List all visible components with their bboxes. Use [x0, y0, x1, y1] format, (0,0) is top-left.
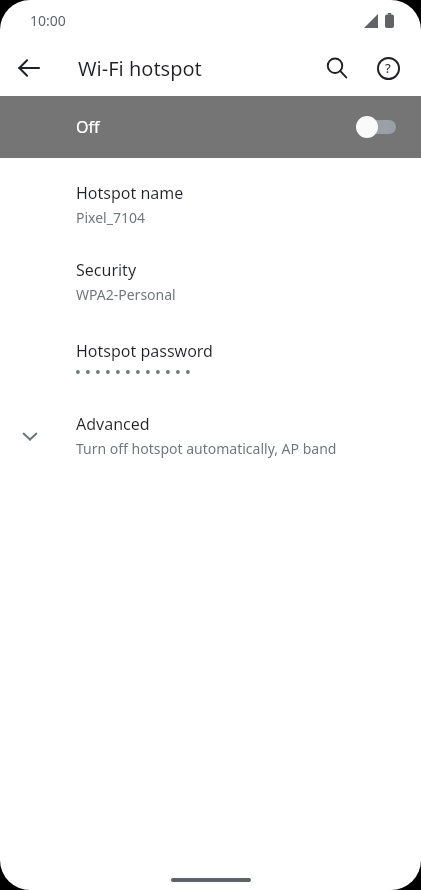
- staticText: Turn off hotspot automatically, AP band: [76, 439, 337, 458]
- button[interactable]: Hotspot name: [0, 166, 421, 243]
- button[interactable]: Security: [0, 243, 421, 320]
- staticText: Hotspot name: [76, 182, 184, 204]
- staticText: ?: [385, 59, 391, 77]
- staticText: Pixel_7104: [76, 208, 145, 227]
- staticText: Advanced: [76, 413, 150, 435]
- button[interactable]: Help: [364, 44, 412, 92]
- staticText: 10:00: [30, 11, 66, 30]
- button[interactable]: Hotspot password: [0, 320, 421, 397]
- staticText: WPA2-Personal: [76, 285, 176, 304]
- button[interactable]: Search: [313, 44, 361, 92]
- button[interactable]: Back: [5, 44, 53, 92]
- button[interactable]: Off: [0, 96, 421, 158]
- button[interactable]: Advanced: [0, 397, 421, 474]
- staticText: Off: [76, 116, 100, 138]
- staticText: Hotspot password: [76, 340, 213, 362]
- staticText: Wi-Fi hotspot: [78, 55, 202, 82]
- staticText: Security: [76, 259, 137, 281]
